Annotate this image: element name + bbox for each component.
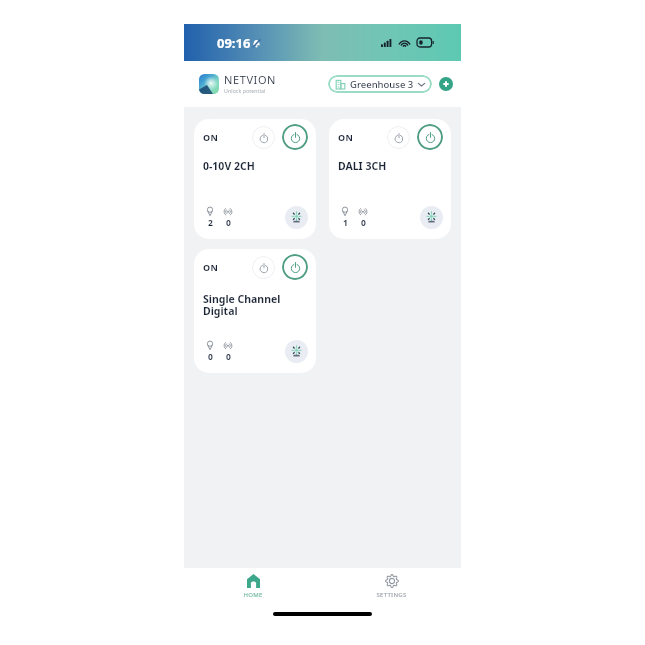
button[interactable]: Power on: [417, 124, 443, 150]
button[interactable]: Power on: [282, 254, 308, 280]
button[interactable]: Brightness: [285, 206, 308, 229]
staticText: 1: [343, 217, 348, 229]
staticText: NETVION: [224, 72, 277, 87]
button[interactable]: Brightness: [420, 206, 443, 229]
button[interactable]: Power off: [252, 126, 275, 149]
button[interactable]: Power off: [387, 126, 410, 149]
staticText: 0: [361, 217, 366, 229]
staticText: 2: [208, 217, 213, 229]
staticText: SETTINGS: [376, 591, 407, 599]
staticText: ON: [338, 131, 354, 143]
button[interactable]: Greenhouse 3: [328, 75, 432, 93]
staticText: ON: [203, 261, 219, 273]
button[interactable]: Power on: [282, 124, 308, 150]
button[interactable]: Add: [439, 77, 453, 91]
staticText: 09:16: [217, 34, 251, 52]
staticText: 0: [226, 217, 231, 229]
staticText: Single Channel Digital: [203, 292, 281, 318]
staticText: Greenhouse 3: [350, 78, 414, 91]
staticText: 0-10V 2CH: [203, 159, 255, 173]
button[interactable]: ON: [194, 249, 316, 373]
staticText: 0: [208, 351, 213, 363]
staticText: 0: [226, 351, 231, 363]
button[interactable]: HOME: [184, 572, 322, 601]
staticText: HOME: [243, 591, 263, 599]
staticText: Unlock potential: [224, 87, 266, 94]
button[interactable]: SETTINGS: [322, 572, 461, 601]
button[interactable]: ON: [194, 119, 316, 239]
staticText: ON: [203, 131, 219, 143]
staticText: DALI 3CH: [338, 159, 387, 173]
button[interactable]: Brightness: [285, 340, 308, 363]
button[interactable]: ON: [329, 119, 451, 239]
button[interactable]: Power off: [252, 256, 275, 279]
